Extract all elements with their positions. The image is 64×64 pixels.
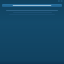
other: Status [58, 0, 63, 2]
button[interactable] [2, 4, 62, 7]
